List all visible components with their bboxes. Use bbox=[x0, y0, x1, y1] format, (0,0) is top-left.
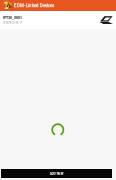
button[interactable]: IPT30_0001 bbox=[0, 11, 116, 29]
staticText: ADD NEW bbox=[49, 171, 63, 176]
staticText: EDM-Linked Devices bbox=[14, 2, 54, 9]
staticText: 01:E0:9F:A7:8C:91 bbox=[3, 21, 22, 25]
button[interactable]: ADD NEW bbox=[1, 169, 112, 178]
staticText: IPT30_0001 bbox=[3, 15, 22, 20]
